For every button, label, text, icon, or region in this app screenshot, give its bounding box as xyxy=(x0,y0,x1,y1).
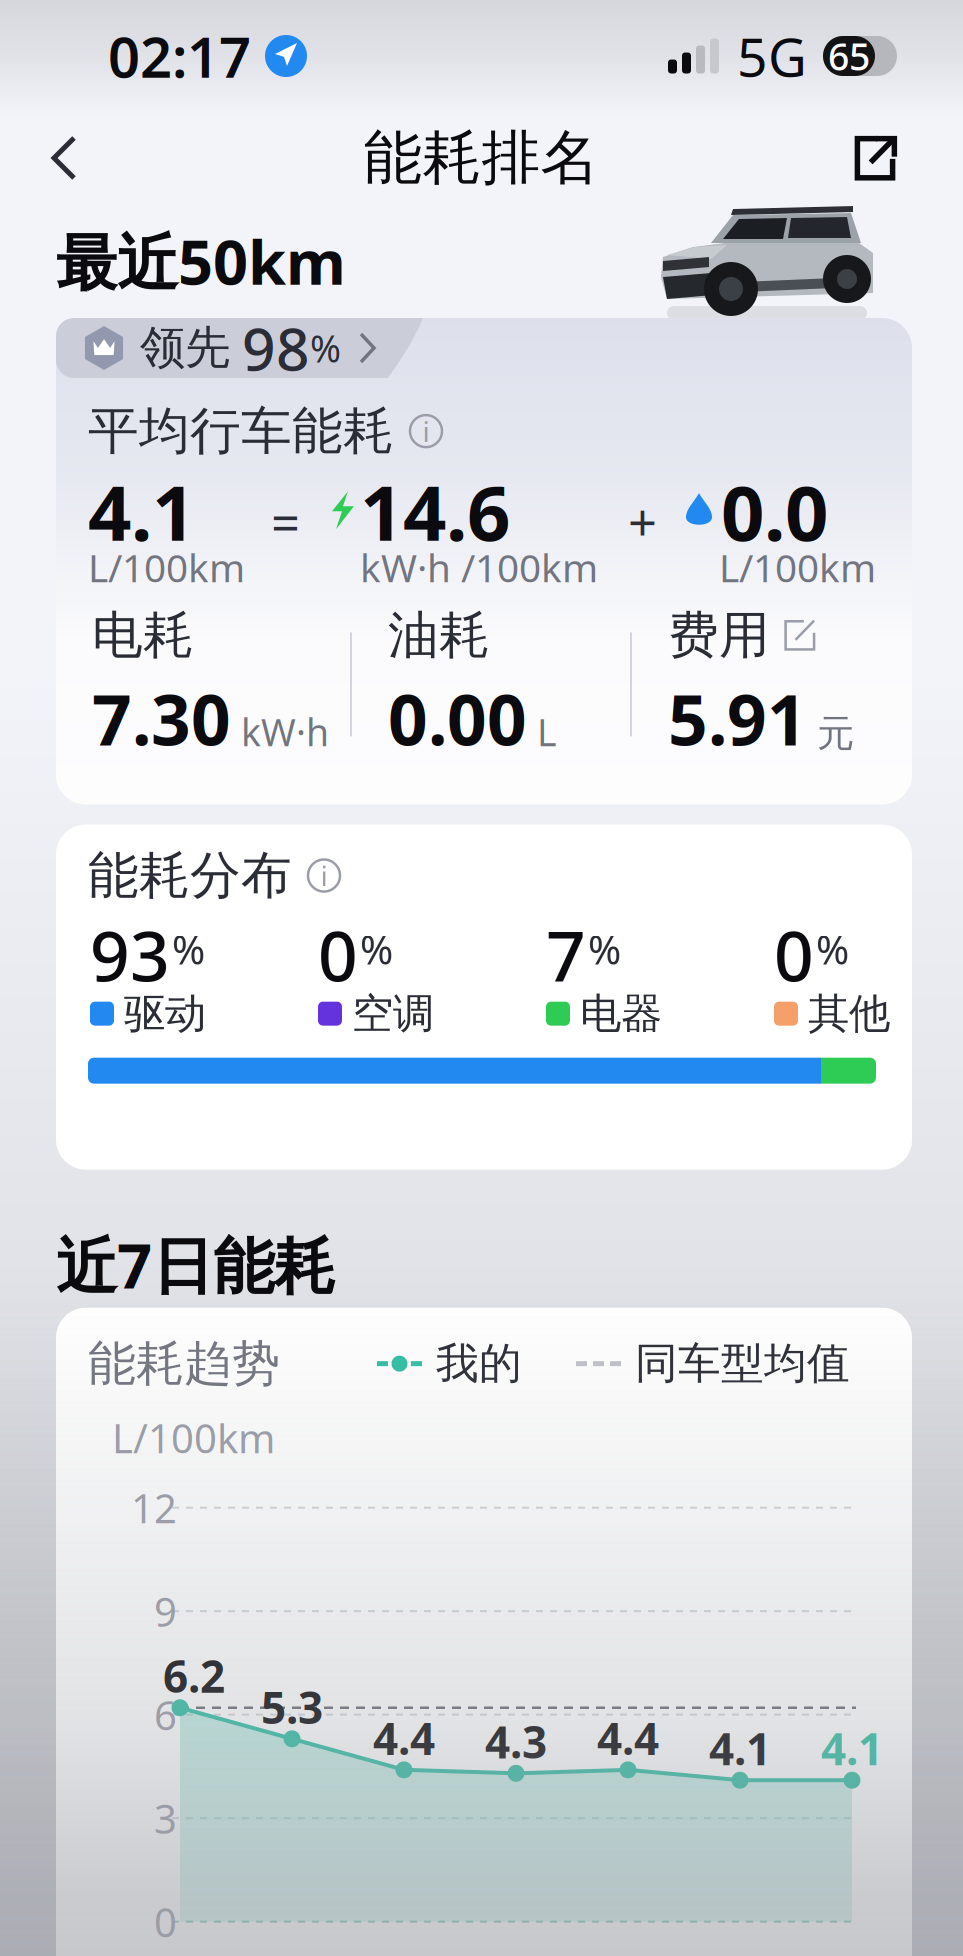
staticText: 98 xyxy=(242,309,310,387)
staticText: = xyxy=(271,488,300,555)
staticText: 4.4 xyxy=(597,1709,659,1767)
staticText: 0 xyxy=(154,1895,177,1948)
staticText: 14.6 xyxy=(360,461,510,562)
staticText: 空调 xyxy=(352,988,434,1039)
staticText: 3 xyxy=(154,1792,177,1845)
staticText: L/100km xyxy=(719,542,876,593)
staticText: 12 xyxy=(131,1481,177,1534)
staticText: 0.0 xyxy=(721,461,828,562)
staticText: 7.30 xyxy=(92,672,231,765)
button[interactable]: Share xyxy=(823,114,927,202)
staticText: 02:17 xyxy=(108,19,251,93)
staticText: 电耗 xyxy=(92,604,194,666)
staticText: 0 xyxy=(774,909,814,1001)
staticText: 6.2 xyxy=(163,1646,225,1705)
staticText: kW·h xyxy=(241,707,329,757)
staticText: 65 xyxy=(828,31,870,81)
staticText: kW·h /100km xyxy=(360,542,598,593)
staticText: 我的 xyxy=(436,1337,522,1390)
staticText: 油耗 xyxy=(388,604,490,666)
button[interactable]: Back xyxy=(22,116,106,200)
staticText: L/100km xyxy=(88,542,245,593)
staticText: 4.1 xyxy=(821,1719,883,1777)
staticText: % xyxy=(310,323,341,373)
button[interactable]: 领先 xyxy=(56,318,442,378)
staticText: 领先 xyxy=(140,320,230,376)
staticText: + xyxy=(628,488,657,555)
staticText: L/100km xyxy=(112,1411,275,1464)
staticText: 4.1 xyxy=(88,461,195,562)
staticText: 其他 xyxy=(808,988,890,1039)
staticText: L xyxy=(537,707,557,757)
staticText: 平均行车能耗 xyxy=(88,400,394,462)
staticText: 电器 xyxy=(580,988,662,1039)
staticText: % xyxy=(360,922,393,976)
staticText: % xyxy=(588,922,621,976)
staticText: 4.1 xyxy=(709,1719,771,1777)
staticText: 5.91 xyxy=(668,672,807,765)
staticText: 4.4 xyxy=(373,1709,435,1767)
staticText: 同车型均值 xyxy=(635,1337,850,1390)
staticText: % xyxy=(816,922,849,976)
staticText: 能耗分布 xyxy=(88,844,292,907)
staticText: 4.3 xyxy=(485,1712,547,1770)
staticText: i xyxy=(320,857,327,894)
staticText: 9 xyxy=(154,1585,177,1638)
staticText: 6 xyxy=(154,1688,177,1741)
staticText: 7 xyxy=(546,909,586,1001)
staticText: 近7日能耗 xyxy=(56,1224,335,1305)
staticText: 能耗趋势 xyxy=(88,1334,280,1393)
staticText: 93 xyxy=(90,909,170,1001)
staticText: 5.3 xyxy=(261,1678,323,1736)
staticText: i xyxy=(422,412,429,450)
staticText: 费用 xyxy=(668,604,770,666)
staticText: 5G xyxy=(737,21,807,91)
staticText: % xyxy=(172,922,205,976)
staticText: 驱动 xyxy=(124,988,206,1039)
staticText: 能耗排名 xyxy=(363,122,599,194)
staticText: 0.00 xyxy=(388,672,527,765)
staticText: 最近50km xyxy=(56,220,346,302)
staticText: 元 xyxy=(817,711,854,757)
staticText: 0 xyxy=(318,909,358,1001)
